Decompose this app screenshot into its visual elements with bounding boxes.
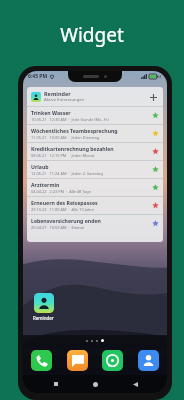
button[interactable]: Recents xyxy=(49,377,63,391)
staticText: Reminder xyxy=(33,315,54,321)
button[interactable]: Kreditkartenrechnung bezahlen xyxy=(27,143,163,160)
staticText: 10.05.21 12:30 AM · Jede Stunde (Mo.-Fr.… xyxy=(31,117,109,122)
staticText: 4 xyxy=(159,74,162,79)
staticText: Reminder xyxy=(44,90,71,97)
staticText: 20.04.27 10:59 AM · Einmal xyxy=(31,225,84,230)
staticText: 04.04.22 2:23 PM · Alle 48 Tage xyxy=(31,189,91,194)
button[interactable]: Arzttermin xyxy=(27,179,163,196)
button[interactable]: Erneuern des Reisepasses xyxy=(27,197,163,214)
staticText: Arzttermin xyxy=(31,181,60,188)
staticText: 08.06.21 12:15 PM · Jeden Monat xyxy=(31,153,95,158)
staticText: 29.10.23 11:00 AM · Alle 10 Jahre xyxy=(31,207,95,212)
button[interactable]: Reminder xyxy=(27,87,163,106)
staticText: 12.06.21 11:24 AM · Jeden 2. Samstag xyxy=(31,171,103,176)
button[interactable]: Back xyxy=(128,377,142,391)
button[interactable]: Trinken Wasser xyxy=(27,107,163,124)
button[interactable]: Urlaub xyxy=(27,161,163,178)
staticText: Erneuern des Reisepasses xyxy=(31,199,98,206)
button[interactable]: Home xyxy=(88,377,102,391)
staticText: Kreditkartenrechnung bezahlen xyxy=(31,145,114,152)
staticText: Widget xyxy=(0,22,184,48)
button[interactable]: Reminder xyxy=(33,293,54,321)
staticText: 11.05.21 10:00 AM · Jeden Dienstag xyxy=(31,135,100,140)
staticText: Urlaub xyxy=(31,163,49,170)
staticText: Trinken Wasser xyxy=(31,109,71,116)
staticText: 6:45 PM xyxy=(28,73,48,80)
button[interactable]: Messages xyxy=(67,350,88,371)
staticText: Wöchentliches Teambesprechung xyxy=(31,127,118,134)
button[interactable]: Contacts xyxy=(138,350,159,371)
button[interactable]: Add reminder xyxy=(147,91,159,103)
staticText: Aktive Erinnerungen xyxy=(44,97,85,103)
button[interactable]: Lebensversicherung enden xyxy=(27,215,163,232)
button[interactable]: Phone xyxy=(31,350,52,371)
button[interactable]: WhatsApp xyxy=(102,350,123,371)
staticText: Lebensversicherung enden xyxy=(31,217,101,224)
button[interactable]: Wöchentliches Teambesprechung xyxy=(27,125,163,142)
